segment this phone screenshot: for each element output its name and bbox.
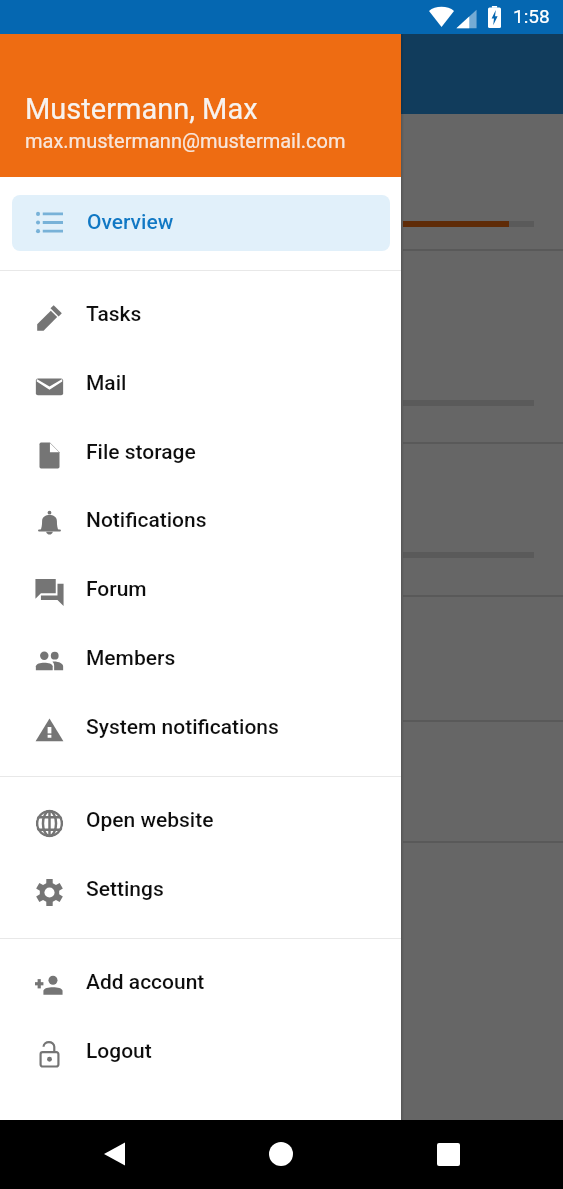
staticText: Forum [86,577,147,602]
staticText: Settings [86,877,164,902]
button[interactable]: File storage [0,421,401,490]
staticText: Open website [86,808,214,833]
button[interactable]: Home [249,1122,313,1186]
button[interactable]: Settings [0,858,401,927]
button[interactable]: Logout [0,1020,401,1089]
button[interactable]: Notifications [0,489,401,558]
staticText: Mail [86,371,127,396]
staticText: Logout [86,1039,152,1064]
staticText: 1:58 [513,5,550,27]
staticText: Add account [86,970,205,995]
button[interactable]: Forum [0,558,401,627]
staticText: Members [86,646,176,671]
button[interactable]: Open website [0,789,401,858]
button[interactable]: Mail [0,352,401,421]
staticText: Mustermann, Max [25,92,258,126]
button[interactable]: Back [82,1122,146,1186]
button[interactable]: Tasks [0,283,401,352]
button[interactable]: Members [0,627,401,696]
staticText: System notifications [86,715,279,740]
button[interactable]: Recents [416,1122,480,1186]
staticText: max.mustermann@mustermail.com [25,129,346,152]
button[interactable]: System notifications [0,696,401,765]
staticText: Notifications [86,508,207,533]
staticText: Overview [87,210,174,235]
staticText: File storage [86,440,196,465]
button[interactable]: Add account [0,951,401,1020]
button[interactable]: Overview [12,195,390,251]
staticText: Tasks [86,302,142,327]
